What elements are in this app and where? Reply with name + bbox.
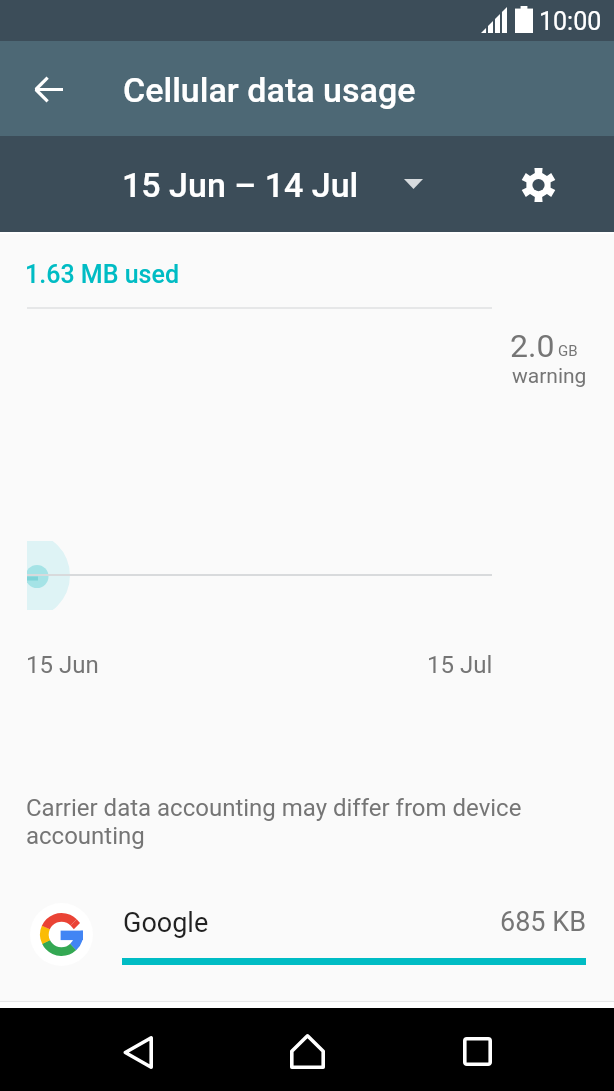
button[interactable]: Back (106, 1020, 170, 1084)
staticText: 1.63 MB used (25, 260, 180, 289)
staticText: 10:00 (539, 7, 602, 36)
staticText: 15 Jun (26, 651, 99, 679)
staticText: 15 Jul (427, 651, 493, 679)
button[interactable]: Google (0, 885, 614, 990)
staticText: Carrier data accounting may differ from … (26, 794, 526, 850)
staticText: 15 Jun – 14 Jul (122, 165, 359, 205)
staticText: Google (123, 907, 209, 939)
button[interactable]: Back (20, 61, 76, 117)
staticText: Cellular data usage (123, 70, 416, 110)
button[interactable]: Settings (510, 156, 567, 213)
staticText: 2.0 (510, 327, 555, 365)
staticText: warning (512, 364, 587, 389)
staticText: 685 KB (500, 906, 586, 938)
button[interactable]: Recents (445, 1019, 509, 1083)
button[interactable]: Home (275, 1019, 339, 1083)
staticText: GB (558, 342, 578, 360)
button[interactable]: 15 Jun – 14 Jul (122, 165, 423, 205)
